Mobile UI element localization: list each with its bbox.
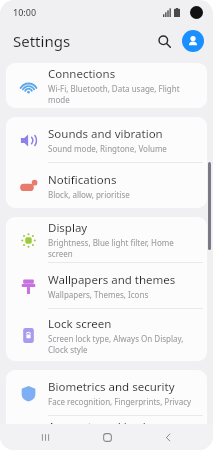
button[interactable]: Display: [6, 217, 207, 262]
staticText: 10:00: [13, 6, 37, 18]
staticText: Display: [48, 220, 88, 236]
staticText: Lock screen: [48, 316, 112, 332]
button[interactable]: Account: [182, 30, 204, 52]
staticText: Screen lock type, Always On Display, Clo…: [48, 333, 199, 355]
staticText: Biometrics and security: [48, 379, 175, 395]
button[interactable]: Sounds and vibration: [6, 117, 207, 162]
button[interactable]: Wallpapers and themes: [6, 263, 207, 308]
staticText: Brightness, Blue light filter, Home scre…: [48, 237, 199, 259]
staticText: Connections: [48, 66, 116, 82]
staticText: Settings: [13, 31, 71, 51]
staticText: Notifications: [48, 172, 117, 188]
button[interactable]: Recents: [28, 424, 62, 450]
staticText: Wi-Fi, Bluetooth, Data usage, Flight mod…: [48, 83, 199, 105]
button[interactable]: Connections: [6, 63, 207, 108]
button[interactable]: Back: [151, 424, 185, 450]
button[interactable]: Lock screen: [6, 309, 207, 361]
button[interactable]: Accounts and backup: [6, 416, 207, 450]
staticText: Samsung Cloud, Smart Switch: [48, 436, 161, 447]
button[interactable]: Notifications: [6, 163, 207, 208]
staticText: Wallpapers, Themes, Icons: [48, 289, 149, 300]
staticText: Accounts and backup: [48, 419, 164, 435]
button[interactable]: Home: [90, 424, 124, 450]
staticText: Sound mode, Ringtone, Volume: [48, 143, 167, 154]
staticText: Sounds and vibration: [48, 126, 163, 142]
staticText: Wallpapers and themes: [48, 272, 176, 288]
staticText: Face recognition, Fingerprints, Privacy: [48, 396, 192, 407]
button[interactable]: Biometrics and security: [6, 370, 207, 415]
staticText: Block, allow, prioritise: [48, 189, 130, 200]
button[interactable]: Search: [151, 28, 177, 54]
